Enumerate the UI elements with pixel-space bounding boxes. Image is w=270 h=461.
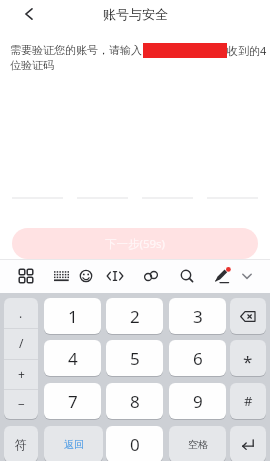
button[interactable] [230,298,266,334]
staticText: 需要验证您的账号，请输入 [10,43,142,57]
button[interactable]: 5 [106,340,163,376]
button[interactable]: 下一步(59s) [12,228,258,259]
button[interactable] [49,264,73,288]
staticText: 收到的4 [227,43,267,58]
staticText: / [19,335,24,351]
staticText: 7 [68,390,78,413]
staticText: 符 [15,437,27,452]
staticText: 3 [193,305,203,328]
button[interactable] [175,264,199,288]
button[interactable] [210,264,234,288]
button[interactable]: 1 [44,298,101,334]
button[interactable]: 9 [169,383,226,419]
button[interactable]: 6 [169,340,226,376]
button[interactable]: − [4,389,38,419]
staticText: # [244,392,253,410]
staticText: * [243,350,253,373]
staticText: 6 [193,347,203,370]
staticText: 空格 [188,438,208,451]
button[interactable]: + [4,359,38,389]
button[interactable]: 返回 [44,426,103,461]
staticText: 2 [130,305,140,328]
button[interactable]: * [230,340,266,376]
button[interactable] [74,264,98,288]
staticText: . [19,305,23,321]
button[interactable]: 0 [106,426,163,461]
button[interactable]: 4 [44,340,101,376]
staticText: 8 [130,390,140,413]
button[interactable]: 2 [106,298,163,334]
button[interactable]: 空格 [169,426,226,461]
button[interactable]: 符 [4,426,38,461]
button[interactable]: 7 [44,383,101,419]
staticText: 下一步(59s) [105,236,166,252]
button[interactable] [235,264,259,288]
button[interactable]: . [4,298,38,328]
staticText: 0 [130,433,140,456]
staticText: 位验证码 [10,58,54,72]
staticText: 返回 [64,438,84,451]
button[interactable] [103,264,127,288]
staticText: + [18,366,25,382]
staticText: 4 [68,347,78,370]
staticText: 1 [68,305,78,328]
button[interactable] [230,426,266,461]
button[interactable] [24,8,34,20]
button[interactable]: 8 [106,383,163,419]
staticText: 5 [130,347,140,370]
staticText: 9 [193,390,203,413]
button[interactable]: / [4,328,38,358]
staticText: − [18,396,25,412]
button[interactable] [139,264,163,288]
button[interactable] [14,264,38,288]
button[interactable]: 3 [169,298,226,334]
button[interactable]: # [230,383,266,419]
staticText: 账号与安全 [103,6,168,22]
